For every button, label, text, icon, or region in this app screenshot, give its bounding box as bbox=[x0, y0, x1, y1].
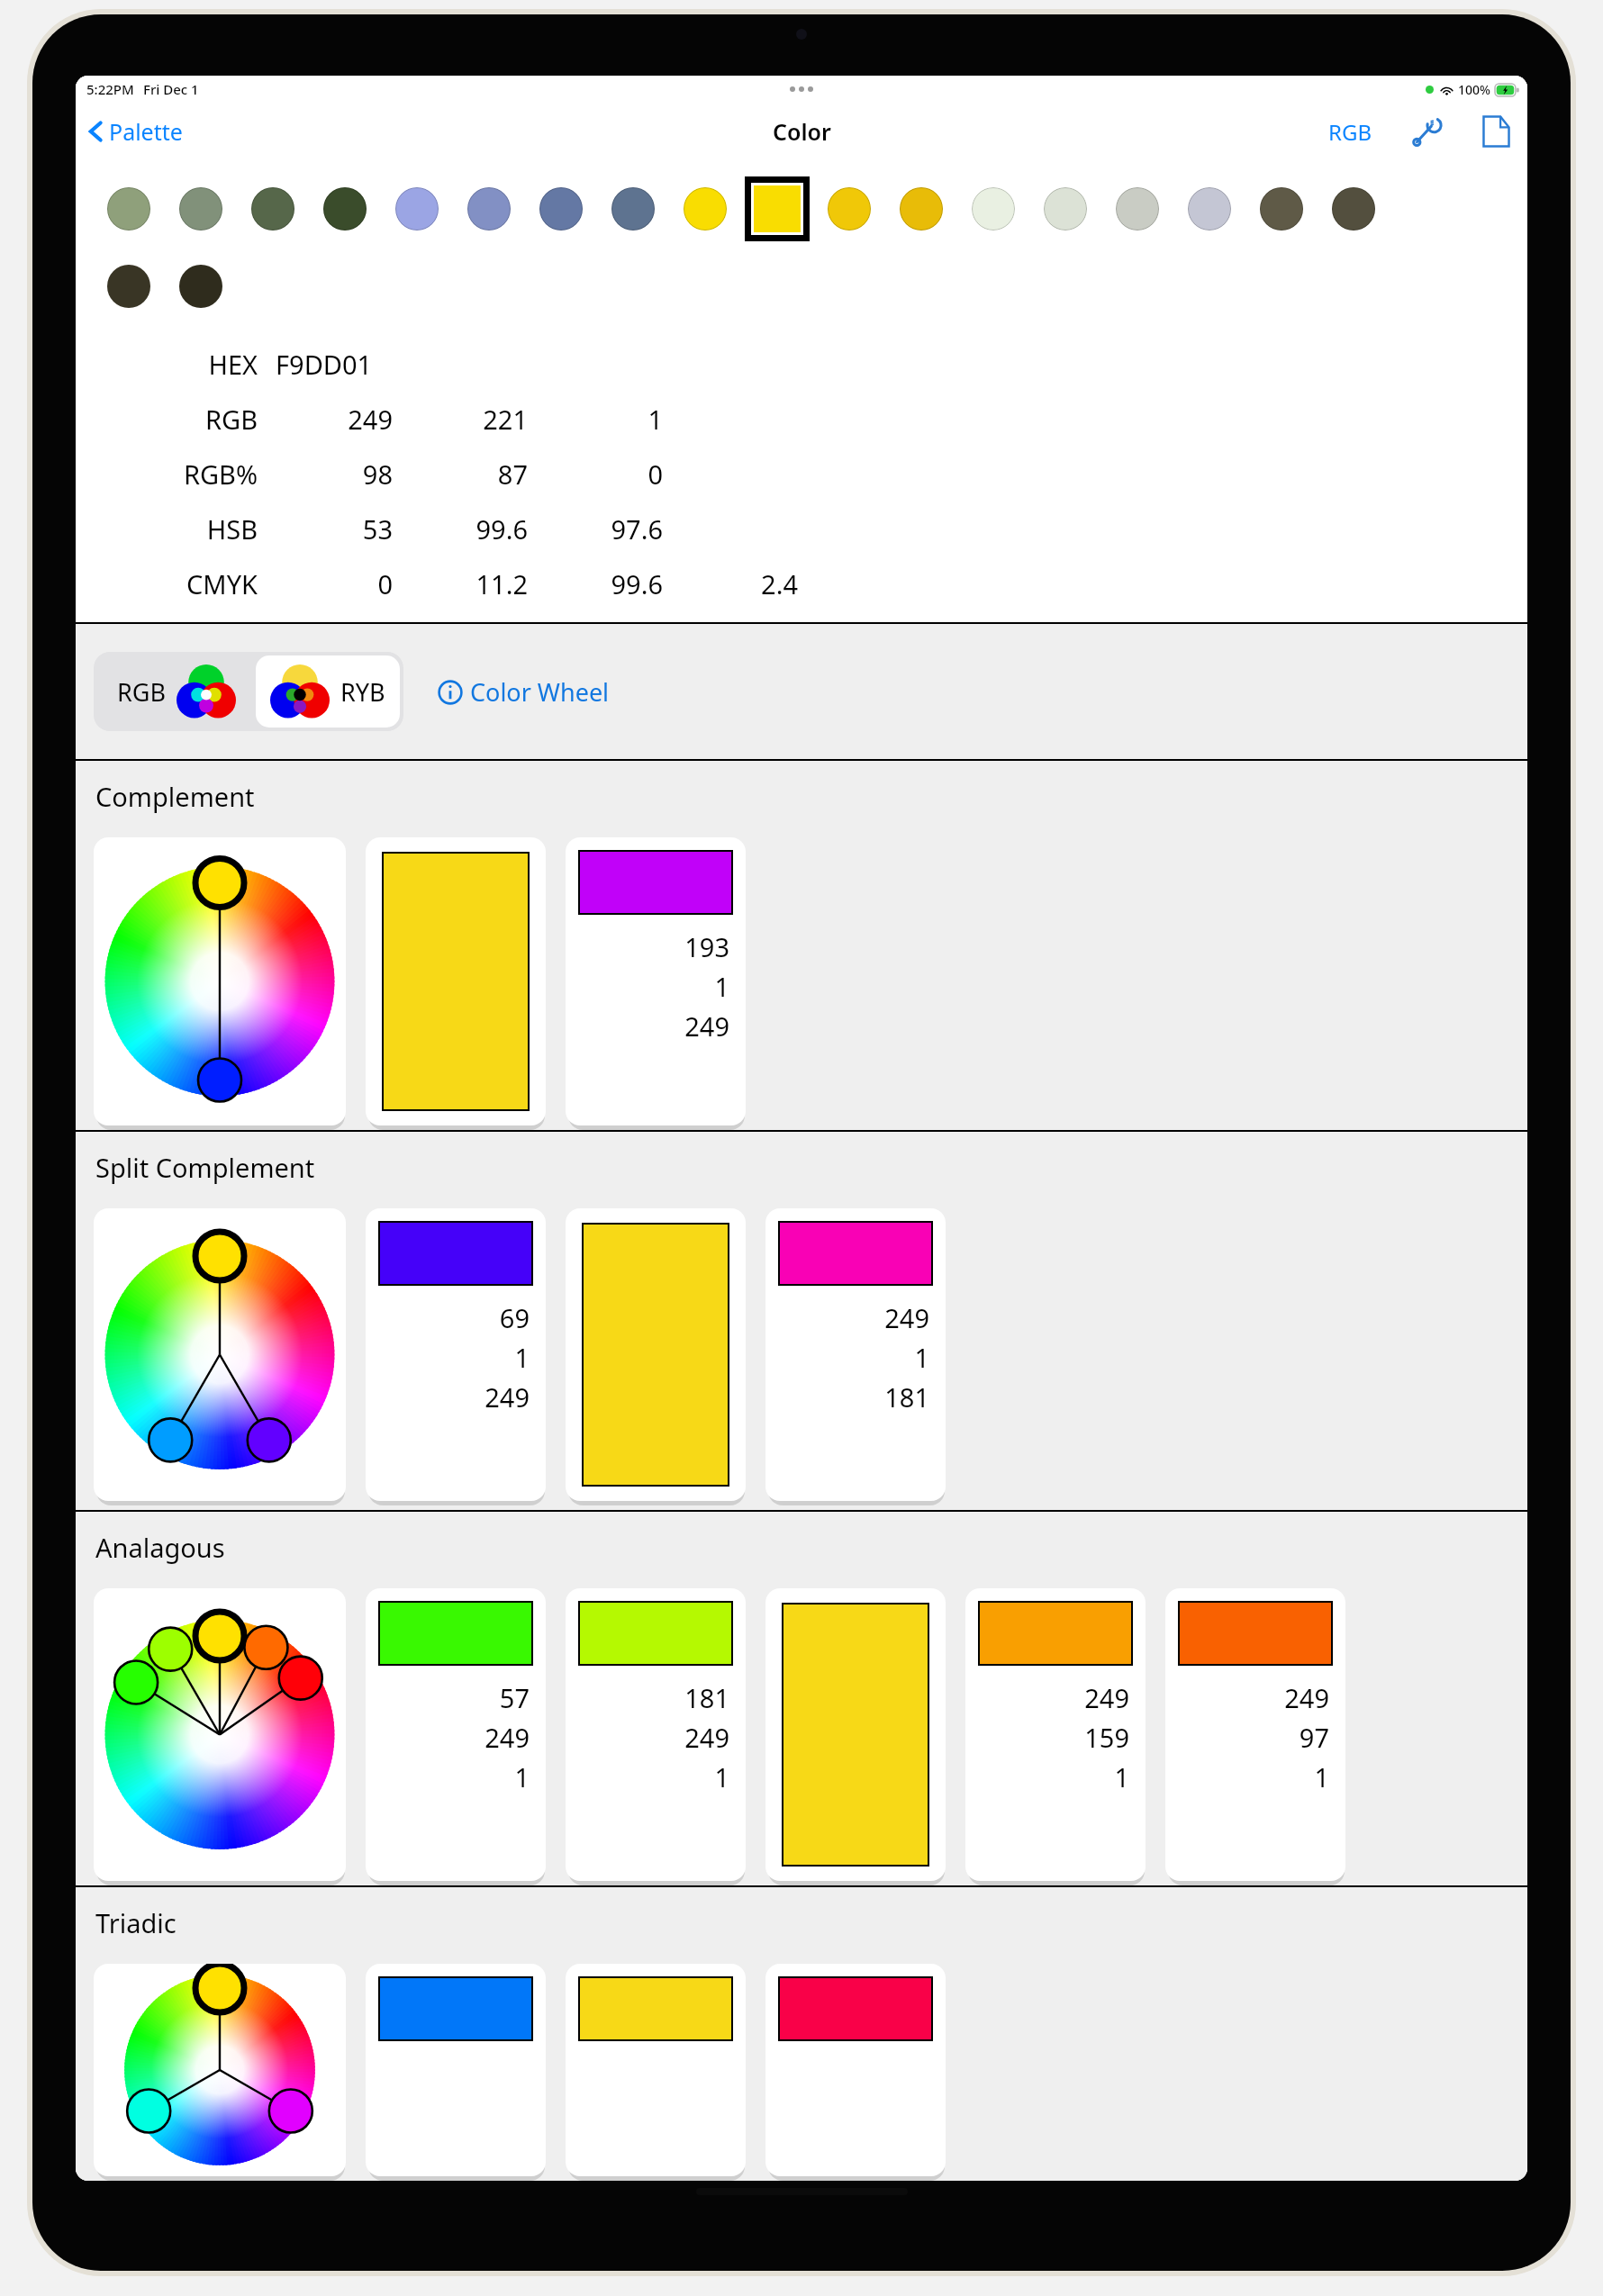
staticText: 1 bbox=[578, 969, 729, 1004]
button[interactable] bbox=[366, 837, 546, 1125]
staticText: 249 bbox=[258, 402, 393, 437]
staticText: 87 bbox=[393, 456, 528, 492]
button[interactable] bbox=[165, 250, 237, 322]
button[interactable]: 193 bbox=[566, 837, 746, 1125]
button[interactable] bbox=[741, 169, 813, 249]
button[interactable]: 249 bbox=[965, 1588, 1146, 1881]
staticText: 1 bbox=[528, 402, 663, 437]
staticText: 1 bbox=[978, 1759, 1129, 1794]
staticText: Color Wheel bbox=[470, 675, 610, 709]
button[interactable]: Settings bbox=[1408, 112, 1447, 151]
staticText: RGB bbox=[1328, 117, 1372, 147]
staticText: 11.2 bbox=[393, 566, 528, 601]
staticText: 53 bbox=[258, 511, 393, 547]
staticText: RGB bbox=[95, 402, 258, 437]
staticText: HEX bbox=[95, 347, 258, 382]
button[interactable]: 181 bbox=[566, 1588, 746, 1881]
staticText: 221 bbox=[393, 402, 528, 437]
button[interactable] bbox=[165, 169, 237, 249]
staticText: 1 bbox=[578, 1759, 729, 1794]
button[interactable] bbox=[885, 169, 957, 249]
staticText: RGB bbox=[117, 675, 166, 709]
staticText: Triadic bbox=[95, 1905, 177, 1940]
button[interactable] bbox=[309, 169, 381, 249]
button[interactable] bbox=[566, 1964, 746, 2176]
button[interactable] bbox=[94, 1588, 346, 1881]
staticText: 97 bbox=[1178, 1720, 1329, 1755]
button[interactable]: 57 bbox=[366, 1588, 546, 1881]
staticText: 97.6 bbox=[528, 511, 663, 547]
staticText: Palette bbox=[109, 116, 183, 147]
button[interactable]: RGB bbox=[1323, 112, 1377, 152]
staticText: 1 bbox=[778, 1340, 929, 1375]
staticText: 249 bbox=[978, 1680, 1129, 1715]
button[interactable] bbox=[1173, 169, 1245, 249]
staticText: 0 bbox=[258, 566, 393, 601]
button[interactable] bbox=[94, 1964, 346, 2176]
button[interactable] bbox=[957, 169, 1029, 249]
staticText: Complement bbox=[95, 779, 255, 814]
staticText: 2.4 bbox=[663, 566, 798, 601]
staticText: 181 bbox=[578, 1680, 729, 1715]
staticText: 0 bbox=[528, 456, 663, 492]
button[interactable] bbox=[453, 169, 525, 249]
button[interactable]: Export PDF bbox=[1478, 111, 1515, 152]
button[interactable]: 249 bbox=[765, 1208, 946, 1501]
staticText: 1 bbox=[1178, 1759, 1329, 1794]
button[interactable] bbox=[1318, 169, 1390, 249]
button[interactable] bbox=[1029, 169, 1101, 249]
button[interactable] bbox=[93, 250, 165, 322]
staticText: 100% bbox=[1458, 81, 1490, 98]
staticText: RGB% bbox=[95, 456, 258, 492]
button[interactable] bbox=[94, 837, 346, 1125]
button[interactable] bbox=[669, 169, 741, 249]
button[interactable] bbox=[366, 1964, 546, 2176]
button[interactable] bbox=[597, 169, 669, 249]
button[interactable] bbox=[1101, 169, 1173, 249]
staticText: Split Complement bbox=[95, 1150, 315, 1185]
staticText: HSB bbox=[95, 511, 258, 547]
button[interactable]: 69 bbox=[366, 1208, 546, 1501]
staticText: RYB bbox=[340, 675, 385, 709]
button[interactable] bbox=[237, 169, 309, 249]
staticText: Fri Dec 1 bbox=[143, 80, 199, 98]
staticText: 69 bbox=[378, 1300, 530, 1335]
button[interactable]: Palette bbox=[83, 111, 186, 152]
staticText: 1 bbox=[378, 1759, 530, 1794]
staticText: 99.6 bbox=[528, 566, 663, 601]
staticText: 249 bbox=[778, 1300, 929, 1335]
staticText: 249 bbox=[578, 1720, 729, 1755]
staticText: F9DD01 bbox=[276, 347, 373, 382]
staticText: 159 bbox=[978, 1720, 1129, 1755]
staticText: 249 bbox=[1178, 1680, 1329, 1715]
staticText: CMYK bbox=[95, 566, 258, 601]
button[interactable]: 249 bbox=[1165, 1588, 1345, 1881]
staticText: Color bbox=[773, 116, 831, 147]
button[interactable] bbox=[566, 1208, 746, 1501]
staticText: 1 bbox=[378, 1340, 530, 1375]
staticText: 249 bbox=[378, 1720, 530, 1755]
staticText: 57 bbox=[378, 1680, 530, 1715]
button[interactable] bbox=[765, 1964, 946, 2176]
staticText: 193 bbox=[578, 929, 729, 964]
button[interactable] bbox=[813, 169, 885, 249]
staticText: Analagous bbox=[95, 1530, 225, 1565]
staticText: 5:22PM bbox=[86, 80, 134, 98]
button[interactable]: Color Wheel bbox=[432, 670, 615, 714]
button[interactable] bbox=[765, 1588, 946, 1881]
staticText: 181 bbox=[778, 1379, 929, 1415]
staticText: 249 bbox=[378, 1379, 530, 1415]
button[interactable] bbox=[94, 1208, 346, 1501]
button[interactable] bbox=[381, 169, 453, 249]
button[interactable]: RGB bbox=[97, 655, 256, 728]
button[interactable] bbox=[525, 169, 597, 249]
button[interactable] bbox=[93, 169, 165, 249]
button[interactable] bbox=[1245, 169, 1318, 249]
staticText: 99.6 bbox=[393, 511, 528, 547]
button[interactable]: RYB bbox=[256, 655, 400, 728]
staticText: 98 bbox=[258, 456, 393, 492]
staticText: 249 bbox=[578, 1008, 729, 1044]
